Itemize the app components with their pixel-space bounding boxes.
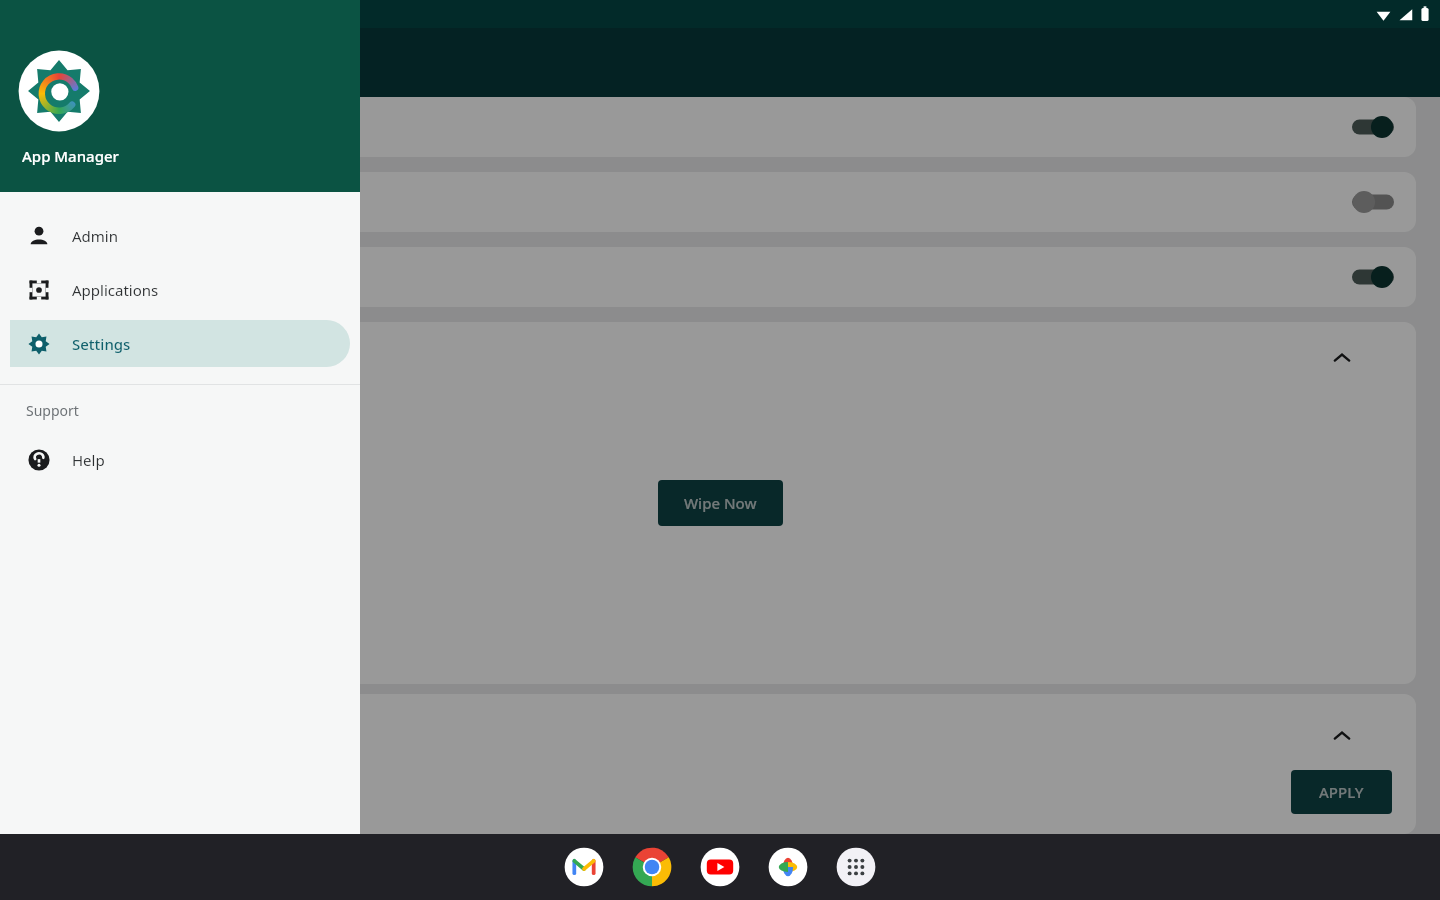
staticText: Help bbox=[72, 450, 105, 470]
button[interactable]: Wipe Now bbox=[658, 480, 783, 526]
button[interactable]: Admin bbox=[10, 212, 350, 259]
button[interactable] bbox=[24, 97, 1416, 157]
staticText: Admin bbox=[72, 226, 118, 246]
button[interactable]: Gmail bbox=[561, 844, 607, 890]
staticText: APPLY bbox=[1319, 782, 1364, 802]
staticText: Wipe Now bbox=[684, 493, 757, 513]
button[interactable]: Applications bbox=[10, 266, 350, 313]
button[interactable]: All apps bbox=[833, 844, 879, 890]
button[interactable]: Settings bbox=[10, 320, 350, 367]
button[interactable]: APPLY bbox=[1291, 770, 1392, 814]
staticText: Settings bbox=[72, 334, 131, 354]
button[interactable]: Collapse bbox=[1328, 344, 1356, 372]
button[interactable] bbox=[24, 247, 1416, 307]
button[interactable]: Chrome bbox=[629, 844, 675, 890]
staticText: Support bbox=[26, 401, 79, 420]
button[interactable]: Photos bbox=[765, 844, 811, 890]
staticText: Applications bbox=[72, 280, 159, 300]
button[interactable]: Help bbox=[10, 436, 350, 483]
staticText: App Manager bbox=[22, 146, 119, 166]
button[interactable] bbox=[24, 172, 1416, 232]
button[interactable]: YouTube bbox=[697, 844, 743, 890]
button[interactable]: Collapse bbox=[1328, 722, 1356, 750]
